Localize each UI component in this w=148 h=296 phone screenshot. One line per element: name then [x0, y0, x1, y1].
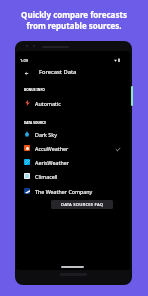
staticText: AccuWeather	[35, 145, 69, 152]
staticText: DATA SOURCE	[24, 121, 46, 125]
staticText: AerisWeather	[35, 159, 69, 166]
staticText: Dark Sky	[35, 131, 57, 138]
button[interactable]: AerisWeather	[16, 155, 130, 169]
button[interactable]: Climacell	[16, 169, 130, 183]
button[interactable]: Automatic	[16, 96, 130, 110]
button[interactable]: Back	[20, 67, 32, 79]
button[interactable]: AccuWeather	[16, 141, 130, 155]
staticText: DATA SOURCES FAQ	[61, 202, 104, 208]
button[interactable]: DATA SOURCES FAQ	[51, 200, 113, 209]
button[interactable]: Dark Sky	[16, 127, 130, 141]
staticText: Climacell	[35, 173, 58, 180]
staticText: Automatic	[35, 100, 61, 107]
staticText: BONUS INFO	[24, 88, 45, 92]
staticText: Forecast Data	[39, 68, 77, 76]
staticText: The Weather Company	[35, 188, 93, 195]
staticText: Quickly compare forecasts	[21, 9, 127, 20]
staticText: 1:09	[20, 58, 28, 63]
staticText: from reputable sources.	[26, 20, 122, 31]
button[interactable]: The Weather Company	[16, 184, 130, 198]
